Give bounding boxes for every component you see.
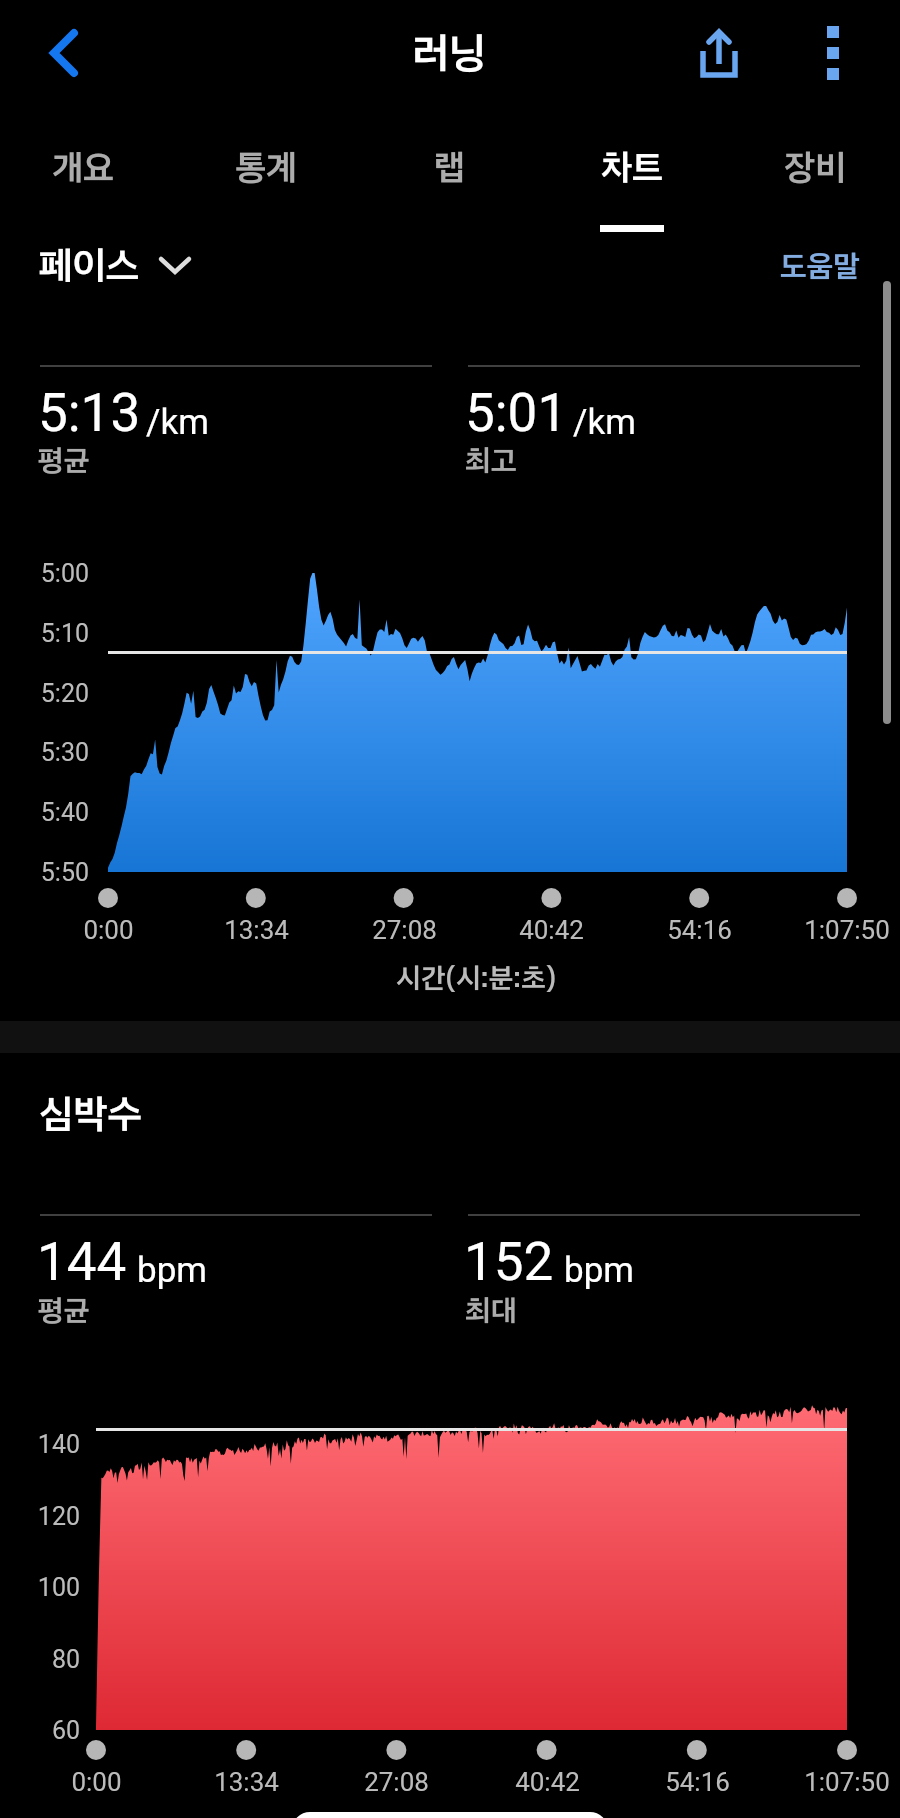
- button[interactable]: More options: [786, 6, 878, 98]
- button[interactable]: 개요: [0, 118, 173, 238]
- staticText: 심박수: [39, 1090, 142, 1138]
- staticText: 5:20: [40, 679, 89, 708]
- staticText: 1:07:50: [804, 915, 890, 945]
- staticText: 5:00: [40, 559, 89, 588]
- staticText: 144: [37, 1231, 127, 1293]
- staticText: 5:30: [40, 738, 89, 767]
- staticText: 통계: [235, 146, 297, 189]
- staticText: 54:16: [665, 1767, 730, 1797]
- staticText: 5:01: [465, 382, 568, 444]
- staticText: 최대: [465, 1292, 517, 1328]
- staticText: bpm: [137, 1250, 207, 1291]
- button[interactable]: 랩: [359, 118, 539, 238]
- button[interactable]: 도움말: [772, 242, 872, 292]
- staticText: 5:50: [40, 858, 89, 887]
- staticText: 평균: [38, 1292, 90, 1328]
- staticText: 5:10: [40, 619, 89, 648]
- staticText: 5:40: [40, 798, 89, 827]
- staticText: /km: [146, 402, 209, 443]
- staticText: 40:42: [515, 1767, 580, 1797]
- staticText: 랩: [434, 146, 465, 189]
- button[interactable]: 차트: [542, 118, 722, 238]
- staticText: 40:42: [519, 915, 584, 945]
- staticText: 27:08: [364, 1767, 429, 1797]
- staticText: 평균: [38, 442, 90, 478]
- staticText: 5:13: [38, 382, 141, 444]
- staticText: 0:00: [83, 915, 134, 945]
- staticText: 도움말: [780, 247, 860, 284]
- button[interactable]: Back: [8, 8, 116, 100]
- button[interactable]: 통계: [176, 118, 356, 238]
- button[interactable]: 장비: [725, 118, 900, 238]
- staticText: bpm: [564, 1250, 634, 1291]
- staticText: 13:34: [224, 915, 289, 945]
- staticText: 페이스: [39, 242, 140, 289]
- staticText: 152: [464, 1231, 554, 1293]
- staticText: 27:08: [372, 915, 437, 945]
- staticText: 최고: [465, 442, 517, 478]
- staticText: 13:34: [214, 1767, 279, 1797]
- staticText: 장비: [784, 146, 846, 189]
- staticText: 0:00: [71, 1767, 122, 1797]
- staticText: 차트: [601, 146, 663, 189]
- staticText: 140: [37, 1430, 80, 1459]
- staticText: 시간(시:분:초): [396, 961, 557, 995]
- staticText: 1:07:50: [804, 1767, 890, 1797]
- button[interactable]: Share: [672, 6, 764, 98]
- staticText: 60: [51, 1716, 80, 1745]
- staticText: 80: [51, 1645, 80, 1674]
- staticText: 100: [37, 1573, 80, 1602]
- staticText: 120: [37, 1502, 80, 1531]
- button[interactable]: 페이스: [30, 236, 230, 298]
- staticText: /km: [573, 402, 636, 443]
- staticText: 러닝: [412, 27, 486, 78]
- staticText: 54:16: [667, 915, 732, 945]
- staticText: 개요: [52, 146, 114, 189]
